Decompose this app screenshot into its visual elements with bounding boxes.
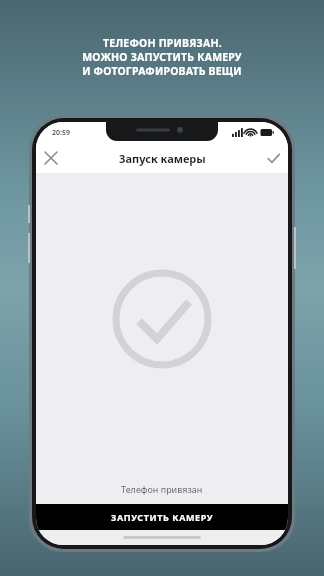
staticText: ТЕЛЕФОН ПРИВЯЗАН.	[103, 36, 222, 50]
staticText: 20:59	[52, 128, 70, 138]
staticText: Телефон привязан	[121, 483, 203, 495]
button[interactable]: ЗАПУСТИТЬ КАМЕРУ	[36, 504, 288, 530]
staticText: И ФОТОГРАФИРОВАТЬ ВЕЩИ	[82, 64, 242, 78]
button[interactable]: Confirm	[258, 143, 288, 173]
staticText: Запуск камеры	[119, 151, 206, 166]
staticText: МОЖНО ЗАПУСТИТЬ КАМЕРУ	[82, 50, 242, 64]
button[interactable]: Close	[36, 143, 66, 173]
staticText: ЗАПУСТИТЬ КАМЕРУ	[111, 511, 214, 523]
